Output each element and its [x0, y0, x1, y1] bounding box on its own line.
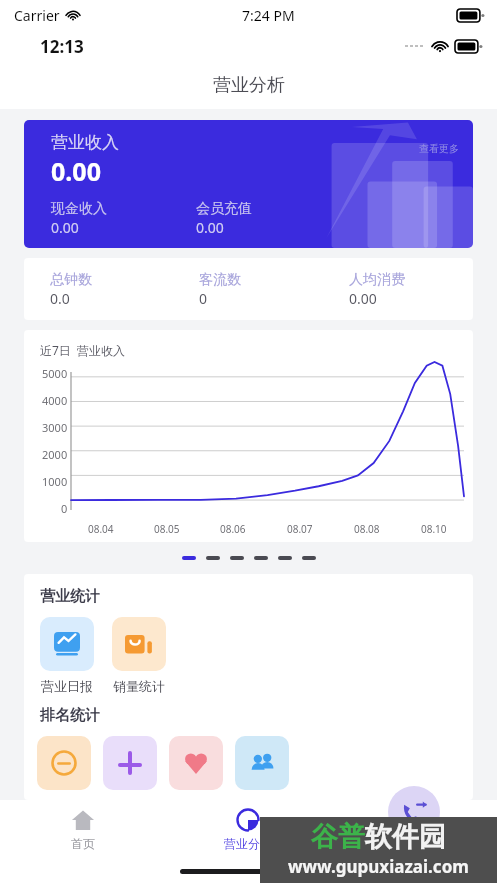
button[interactable]: Ranking item — [37, 736, 91, 790]
staticText: 营业日报 — [41, 678, 93, 694]
staticText: 2000 — [42, 447, 68, 462]
staticText: 销量统计 — [113, 678, 165, 694]
button[interactable]: 营业收入 — [24, 120, 473, 248]
staticText: 1000 — [42, 474, 68, 489]
other: Call — [388, 786, 440, 838]
button[interactable] — [278, 556, 292, 560]
staticText: 营业统计 — [40, 587, 100, 606]
staticText: 现金收入 — [51, 200, 107, 218]
button[interactable]: 人均消费 — [323, 258, 473, 320]
staticText: 查看更多 — [419, 142, 459, 155]
staticText: 0.00 — [51, 154, 101, 188]
staticText: 呼叫 — [402, 842, 426, 848]
staticText: 4000 — [42, 393, 68, 408]
staticText: 5000 — [42, 366, 68, 381]
other: Business analysis — [236, 808, 260, 832]
staticText: 08.05 — [154, 522, 180, 536]
staticText: 0.00 — [51, 218, 79, 237]
button[interactable]: Ranking item — [103, 736, 157, 790]
button[interactable] — [230, 556, 244, 560]
button[interactable]: 营业日报 — [37, 617, 97, 694]
button[interactable]: Ranking item — [169, 736, 223, 790]
button[interactable] — [302, 556, 316, 560]
staticText: 12:13 — [40, 35, 84, 58]
staticText: 排名统计 — [40, 706, 100, 725]
staticText: 人均消费 — [349, 271, 405, 289]
staticText: 营业分析 — [224, 836, 272, 851]
staticText: 3000 — [42, 420, 68, 435]
staticText: 08.06 — [220, 522, 246, 536]
button[interactable]: Business analysis — [165, 800, 331, 858]
staticText: 营业收入 — [51, 132, 119, 153]
staticText: 08.08 — [354, 522, 380, 536]
staticText: 会员充值 — [196, 200, 252, 218]
staticText: 首页 — [71, 836, 95, 851]
button[interactable] — [182, 556, 196, 560]
staticText: Carrier — [14, 6, 60, 25]
staticText: 0 — [61, 501, 68, 516]
button[interactable] — [206, 556, 220, 560]
staticText: 7:24 PM — [242, 6, 295, 25]
button[interactable]: Home — [0, 800, 165, 858]
staticText: www.gupuxiazai.com — [288, 855, 469, 878]
staticText: 0.0 — [50, 289, 70, 308]
button[interactable]: 客流数 — [173, 258, 323, 320]
button[interactable]: Call — [331, 800, 497, 858]
staticText: 谷普 — [311, 820, 365, 854]
staticText: 近7日 营业收入 — [40, 342, 126, 358]
staticText: 总钟数 — [50, 271, 92, 289]
staticText: 08.07 — [287, 522, 313, 536]
staticText: 08.04 — [88, 522, 114, 536]
other: Home — [71, 808, 95, 832]
button[interactable]: 总钟数 — [24, 258, 173, 320]
button[interactable]: 销量统计 — [109, 617, 169, 694]
button[interactable]: 近7日 营业收入 — [24, 330, 473, 542]
staticText: 营业分析 — [213, 74, 285, 97]
staticText: 0.00 — [349, 289, 377, 308]
staticText: 客流数 — [199, 271, 241, 289]
button[interactable]: 查看更多 — [419, 142, 459, 155]
staticText: 08.10 — [421, 522, 447, 536]
staticText: 0 — [199, 289, 208, 308]
staticText: 0.00 — [196, 218, 224, 237]
button[interactable]: Ranking item — [235, 736, 289, 790]
button[interactable] — [254, 556, 268, 560]
staticText: 软件园 — [365, 820, 446, 854]
